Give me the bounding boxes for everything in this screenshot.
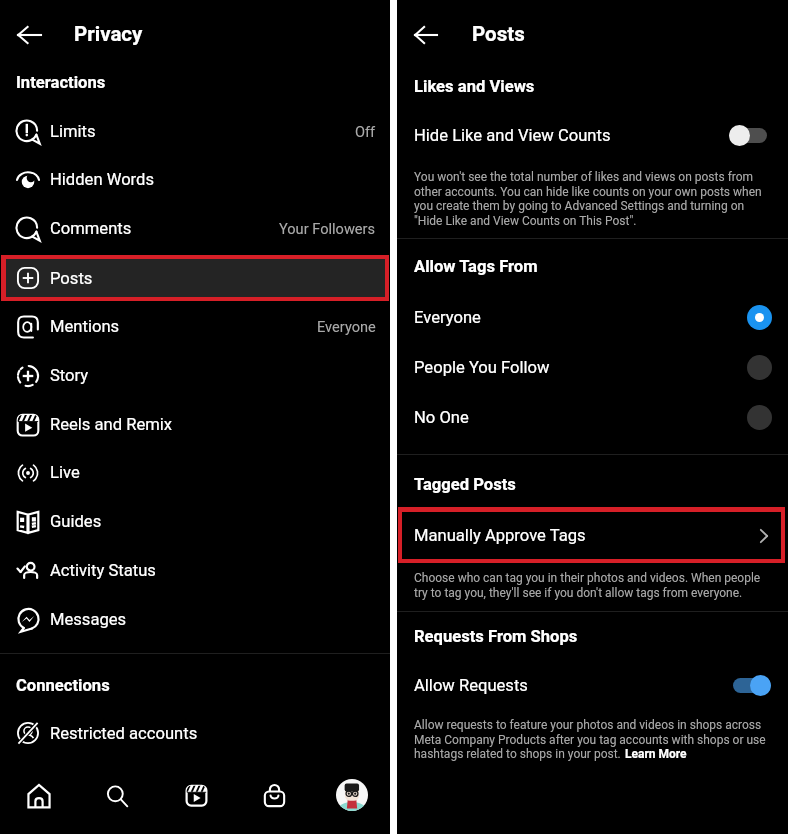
staticText: Activity Status (50, 561, 156, 580)
button[interactable]: Posts (6, 259, 385, 297)
button[interactable]: Mentions (0, 302, 390, 351)
button[interactable]: Live (0, 448, 390, 497)
staticText: Meta Company Products after you tag acco… (414, 733, 766, 747)
staticText: Everyone (414, 308, 481, 327)
staticText: Reels and Remix (50, 415, 173, 434)
button[interactable]: Back (6, 12, 51, 57)
staticText: Posts (472, 22, 525, 46)
staticText: Restricted accounts (50, 724, 198, 743)
staticText: Hidden Words (50, 170, 154, 189)
staticText: Live (50, 463, 80, 482)
staticText: You won't see the total number of likes … (414, 170, 754, 184)
button[interactable]: People You Follow (397, 342, 788, 392)
staticText: Your Followers (279, 220, 376, 237)
button[interactable]: Hidden Words (0, 155, 390, 204)
staticText: People You Follow (414, 358, 550, 377)
staticText: Hide Like and View Counts (414, 126, 611, 145)
button[interactable]: No One (397, 392, 788, 442)
button[interactable]: Story (0, 351, 390, 400)
staticText: Posts (50, 269, 93, 288)
staticText: Allow Requests (414, 676, 528, 695)
staticText: Privacy (74, 22, 143, 46)
staticText: Choose who can tag you in their photos a… (414, 571, 761, 585)
button[interactable]: Manually Approve Tags (402, 512, 781, 559)
staticText: Everyone (317, 318, 376, 335)
staticText: "Hide Like and View Counts on This Post"… (414, 214, 637, 228)
staticText: Likes and Views (414, 77, 535, 96)
staticText: Mentions (50, 317, 120, 336)
button[interactable]: Allow Requests (397, 665, 788, 705)
staticText: Connections (16, 676, 110, 695)
staticText: No One (414, 408, 469, 427)
button[interactable] (729, 125, 767, 146)
staticText: Limits (50, 122, 96, 141)
button[interactable]: Everyone (397, 292, 788, 342)
button[interactable]: Restricted accounts (0, 709, 390, 757)
button[interactable]: Activity Status (0, 546, 390, 595)
staticText: Tagged Posts (414, 475, 516, 494)
button[interactable]: Comments (0, 204, 390, 253)
staticText: Story (50, 366, 89, 385)
staticText: Messages (50, 610, 127, 629)
staticText: Guides (50, 512, 102, 531)
button[interactable]: Shop (251, 773, 297, 819)
staticText: Manually Approve Tags (414, 526, 586, 545)
staticText: Interactions (16, 73, 106, 92)
button[interactable] (733, 675, 771, 696)
button[interactable]: Guides (0, 497, 390, 546)
button[interactable]: Limits (0, 107, 390, 156)
staticText: Allow Tags From (414, 257, 538, 276)
staticText: hashtags related to shops in your post. (414, 747, 621, 761)
staticText: Allow requests to feature your photos an… (414, 718, 762, 732)
button[interactable]: Search (94, 773, 140, 819)
button[interactable]: Learn More (625, 747, 687, 761)
button[interactable]: Hide Like and View Counts (397, 114, 788, 156)
button[interactable]: Messages (0, 595, 390, 644)
button[interactable]: Home (16, 773, 62, 819)
button[interactable]: Reels and Remix (0, 400, 390, 449)
button[interactable]: Profile (329, 772, 375, 818)
staticText: Requests From Shops (414, 627, 578, 646)
staticText: you create them by going to Advanced Set… (414, 199, 745, 213)
button[interactable]: Back (403, 12, 448, 57)
staticText: Off (355, 123, 376, 140)
staticText: other accounts. You can hide like counts… (414, 185, 762, 199)
button[interactable]: Reels (173, 772, 219, 818)
staticText: try to tag you, they'll see if you don't… (414, 586, 743, 600)
staticText: Comments (50, 219, 132, 238)
